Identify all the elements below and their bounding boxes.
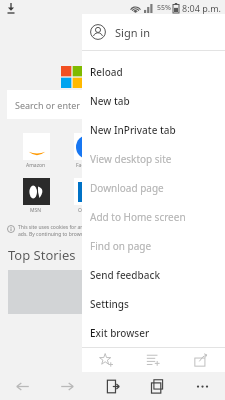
button[interactable]: Tabs xyxy=(135,372,180,400)
staticText: Download page xyxy=(90,181,164,195)
staticText: New InPrivate tab xyxy=(90,123,176,137)
button[interactable] xyxy=(8,270,217,314)
staticText: Find on page xyxy=(90,239,152,253)
staticText: MSN xyxy=(30,207,42,214)
button[interactable]: Add to Home screen xyxy=(82,202,225,231)
button[interactable]: Add to reading list xyxy=(129,348,177,372)
staticText: Top Stories xyxy=(8,246,76,264)
staticText: Settings xyxy=(90,297,129,311)
button[interactable]: New tab xyxy=(90,372,135,400)
button[interactable]: Amazon xyxy=(10,133,62,169)
staticText: Sign in xyxy=(115,25,150,40)
button[interactable]: Bing xyxy=(113,178,164,214)
button[interactable]: New tab xyxy=(82,86,225,115)
staticText: eBay xyxy=(133,162,145,169)
button[interactable]: View desktop site xyxy=(82,144,225,173)
button[interactable]: Outlook xyxy=(62,178,113,214)
staticText: Outlook xyxy=(78,207,97,214)
button[interactable]: Back xyxy=(0,372,45,400)
button[interactable]: New InPrivate tab xyxy=(82,115,225,144)
staticText: Facebook xyxy=(76,162,99,169)
staticText: This site uses cookies for analytics, pe… xyxy=(18,224,161,231)
button[interactable]: Add to favorites xyxy=(82,348,129,372)
staticText: Send feedback xyxy=(90,268,160,282)
button[interactable]: Download page xyxy=(82,173,225,202)
staticText: Reload xyxy=(90,65,123,79)
staticText: View desktop site xyxy=(90,152,172,166)
staticText: New tab xyxy=(90,94,130,108)
staticText: 55% xyxy=(157,3,171,13)
button[interactable]: eBay xyxy=(113,133,164,169)
button[interactable]: More xyxy=(180,372,225,400)
button[interactable]: Share xyxy=(177,348,225,372)
button[interactable]: Reload xyxy=(82,57,225,86)
staticText: 8:04 p.m. xyxy=(182,2,221,14)
button[interactable]: Yahoo xyxy=(164,133,215,169)
staticText: ads. By continuing to browse this site, … xyxy=(18,231,159,238)
button[interactable]: Settings xyxy=(82,289,225,318)
button[interactable]: Forward xyxy=(45,372,90,400)
staticText: Amazon xyxy=(26,162,46,169)
button[interactable]: Exit browser xyxy=(82,318,225,347)
staticText: Add to Home screen xyxy=(90,210,186,224)
button[interactable]: Search or enter web address xyxy=(7,90,218,119)
staticText: Exit browser xyxy=(90,326,150,340)
staticText: Search or enter web address xyxy=(15,99,136,111)
button[interactable]: Find on page xyxy=(82,231,225,260)
button[interactable]: Send feedback xyxy=(82,260,225,289)
button[interactable]: Facebook xyxy=(62,133,113,169)
button[interactable]: MSN xyxy=(10,178,62,214)
button[interactable]: Sign in xyxy=(82,14,225,50)
